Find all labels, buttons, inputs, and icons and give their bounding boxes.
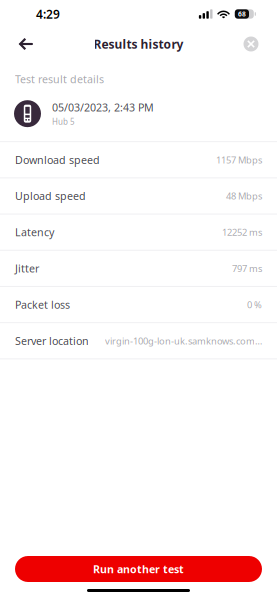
- staticText: 12252 ms: [222, 226, 262, 238]
- staticText: 1157 Mbps: [216, 154, 262, 166]
- staticText: Test result details: [15, 72, 104, 86]
- staticText: Download speed: [15, 153, 100, 167]
- staticText: 4:29: [36, 6, 60, 22]
- staticText: Run another test: [93, 562, 184, 576]
- staticText: 0 %: [247, 298, 262, 311]
- staticText: Jitter: [15, 261, 39, 275]
- button[interactable]: Close: [236, 29, 266, 59]
- staticText: Results history: [93, 36, 183, 52]
- button[interactable]: Back: [10, 29, 42, 59]
- button[interactable]: Packet loss: [0, 287, 277, 323]
- staticText: virgin-100g-lon-uk.samknows.com,virgi...: [105, 335, 262, 347]
- staticText: 05/03/2023, 2:43 PM: [52, 100, 154, 114]
- staticText: Hub 5: [52, 116, 75, 127]
- staticText: 48 Mbps: [226, 190, 262, 202]
- button[interactable]: Upload speed: [0, 178, 277, 215]
- button[interactable]: Jitter: [0, 251, 277, 287]
- button[interactable]: Server location: [0, 323, 277, 359]
- staticText: 68: [238, 10, 246, 18]
- staticText: Latency: [15, 225, 54, 239]
- button[interactable]: Download speed: [0, 142, 277, 178]
- button[interactable]: Latency: [0, 215, 277, 251]
- staticText: Server location: [15, 334, 89, 348]
- staticText: 797 ms: [232, 262, 262, 275]
- staticText: Packet loss: [15, 297, 70, 312]
- button[interactable]: Run another test: [15, 556, 262, 582]
- staticText: Upload speed: [15, 189, 86, 203]
